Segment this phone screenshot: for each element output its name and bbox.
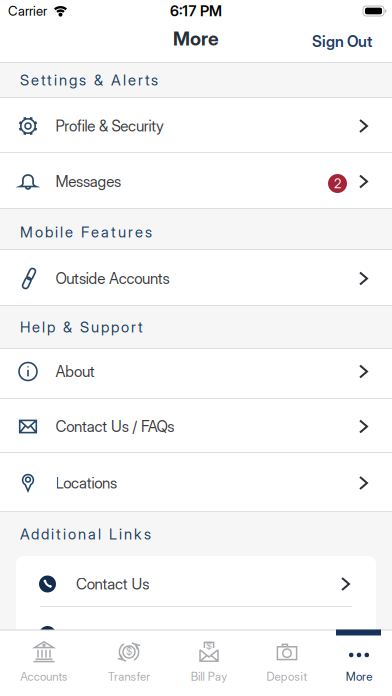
staticText: Bill Pay <box>191 669 227 683</box>
staticText: Outside Accounts <box>55 269 169 288</box>
staticText: Accounts <box>20 669 68 683</box>
staticText: Settings & Alerts <box>20 71 158 89</box>
button[interactable]: Profile & Security <box>0 98 392 152</box>
staticText: Mobile Features <box>20 223 152 241</box>
button[interactable]: Sign Out <box>312 32 372 51</box>
button[interactable]: Contact Us / FAQs <box>0 399 392 452</box>
staticText: $ <box>126 645 132 657</box>
button[interactable]: About <box>0 349 392 398</box>
staticText: Messages <box>55 172 121 191</box>
staticText: Deposit <box>266 669 308 683</box>
staticText: Contact Us <box>76 575 149 593</box>
staticText: More <box>346 669 372 683</box>
staticText: $ <box>206 640 212 652</box>
staticText: 6:17 PM <box>170 2 222 20</box>
staticText: Help & Support <box>20 318 143 336</box>
staticText: Carrier <box>8 3 47 19</box>
button[interactable]: Outside Accounts <box>0 250 392 305</box>
button[interactable]: $ <box>88 630 170 688</box>
staticText: More <box>173 27 219 50</box>
button[interactable]: Messages <box>0 153 392 208</box>
button[interactable]: $ <box>170 630 248 688</box>
staticText: About <box>55 362 95 381</box>
button[interactable]: More <box>326 630 392 688</box>
button[interactable]: Accounts <box>0 630 88 688</box>
button[interactable]: Deposit <box>248 630 326 688</box>
button[interactable]: Locations <box>0 453 392 511</box>
staticText: 2 <box>334 176 341 191</box>
staticText: Locations <box>55 474 117 492</box>
staticText: Contact Us / FAQs <box>55 417 174 436</box>
staticText: Transfer <box>108 669 150 683</box>
staticText: Additional Links <box>20 525 151 543</box>
staticText: Profile & Security <box>55 117 164 135</box>
button[interactable]: Contact Us <box>16 556 376 606</box>
staticText: Sign Out <box>312 32 372 51</box>
